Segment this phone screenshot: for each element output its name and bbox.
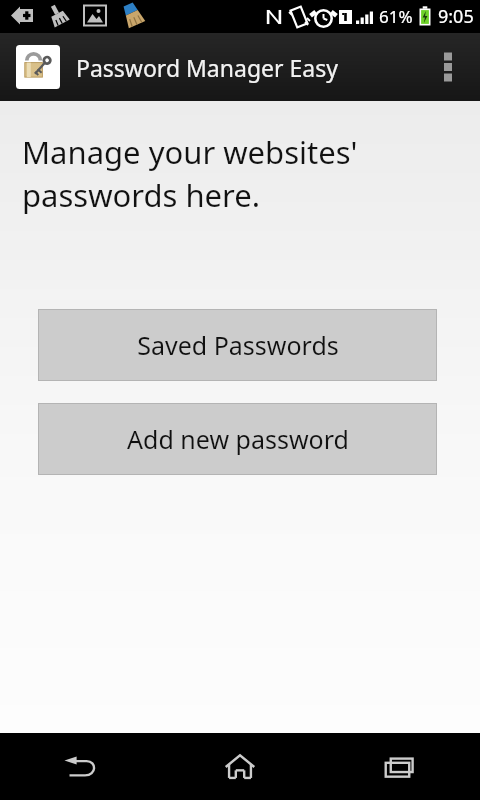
button[interactable]: Saved Passwords (39, 310, 436, 380)
button[interactable]: Recents (320, 733, 480, 800)
other: NFC (264, 6, 284, 28)
other: Battery charging (418, 6, 432, 28)
button[interactable]: Home (160, 733, 320, 800)
button[interactable]: Add new password (39, 404, 436, 474)
other: Alarm (313, 6, 334, 28)
button[interactable]: Back (0, 733, 160, 800)
staticText: Manage your websites' passwords here. (22, 131, 358, 216)
staticText: Add new password (127, 422, 349, 456)
staticText: Password Manager Easy (76, 52, 338, 83)
button[interactable]: More options (426, 33, 470, 101)
staticText: Saved Passwords (137, 328, 339, 362)
staticText: 9:05 (438, 4, 474, 29)
staticText: 61% (379, 5, 413, 28)
